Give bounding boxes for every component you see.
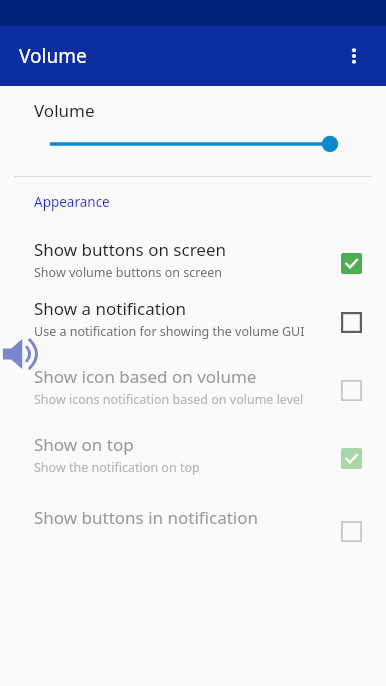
staticText: Show volume buttons on screen [34,264,223,281]
button[interactable]: Show buttons in notification [0,506,386,544]
other: Volume [2,337,48,371]
button[interactable]: Show icon based on volume [0,365,386,408]
staticText: Use a notification for showing the volum… [34,323,305,340]
staticText: Volume [19,43,87,69]
button[interactable]: Show buttons in notification [338,518,364,544]
button[interactable]: More options [332,34,376,78]
staticText: Show a notification [34,297,187,320]
staticText: Appearance [34,193,110,211]
button[interactable]: Show buttons on screen [338,250,364,276]
button[interactable]: Show icon based on volume [338,377,364,403]
staticText: Show buttons in notification [34,506,259,529]
button[interactable] [0,131,386,157]
staticText: Volume [34,99,95,122]
staticText: Show the notification on top [34,459,200,476]
button[interactable]: Show a notification [0,297,386,340]
staticText: Show buttons on screen [34,238,227,261]
staticText: Show icon based on volume [34,365,257,388]
staticText: Show icons notification based on volume … [34,391,304,408]
button[interactable]: Show on top [338,445,364,471]
staticText: Show on top [34,433,134,456]
button[interactable]: Show buttons on screen [0,238,386,281]
button[interactable]: Show a notification [338,309,364,335]
button[interactable]: Show on top [0,433,386,476]
